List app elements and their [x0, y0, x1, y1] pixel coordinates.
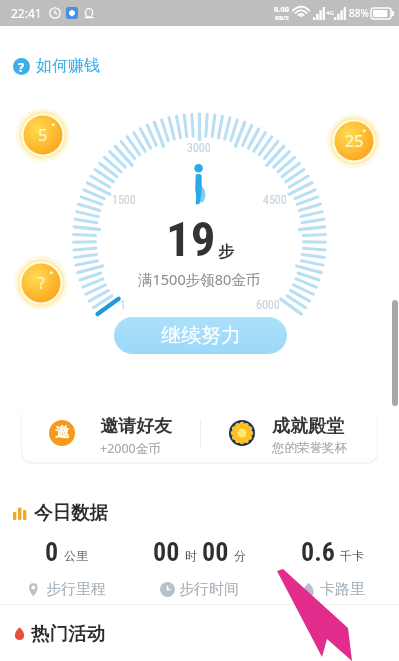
staticText: 分 — [234, 548, 246, 563]
staticText: 满1500步领80金币 — [138, 269, 261, 289]
staticText: 卡路里 — [320, 580, 365, 599]
staticText: 今日数据 — [34, 501, 108, 524]
staticText: 1500 — [112, 193, 136, 207]
staticText: 19 — [166, 211, 216, 268]
staticText: 22:41 — [11, 5, 42, 21]
staticText: 您的荣誉奖杯 — [272, 440, 347, 456]
staticText: 千卡 — [340, 548, 364, 563]
button[interactable]: Coin 25 — [327, 114, 381, 168]
staticText: 继续努力 — [161, 323, 241, 348]
staticText: KB/S — [275, 14, 289, 22]
button[interactable]: 邀 — [22, 404, 200, 462]
staticText: +2000金币 — [100, 440, 161, 457]
staticText: 热门活动 — [31, 622, 105, 645]
staticText: 0.00 — [274, 4, 289, 14]
button[interactable]: 热门活动 — [13, 622, 105, 645]
staticText: 时 — [185, 548, 197, 563]
staticText: 成就殿堂 — [272, 415, 344, 438]
button[interactable]: Coin ? — [14, 256, 68, 310]
staticText: 邀请好友 — [100, 415, 172, 438]
staticText: 88% — [349, 6, 369, 20]
staticText: 1 — [120, 298, 126, 312]
staticText: 步行里程 — [46, 580, 106, 599]
button[interactable]: 00 — [133, 537, 266, 599]
staticText: 4500 — [263, 193, 287, 207]
staticText: 6000 — [256, 298, 280, 312]
button[interactable]: 成就殿堂 — [201, 404, 377, 462]
staticText: 如何赚钱 — [36, 56, 100, 76]
staticText: 邀 — [55, 424, 69, 442]
staticText: 25 — [345, 130, 364, 152]
staticText: 步 — [218, 242, 234, 262]
staticText: 0 — [45, 537, 59, 567]
button[interactable]: Coin 5 — [16, 108, 70, 162]
staticText: 00 — [153, 537, 180, 567]
button[interactable]: 0 — [0, 537, 133, 599]
button[interactable]: ? — [13, 56, 100, 76]
button[interactable]: 0.6 — [266, 537, 399, 599]
staticText: 4G — [326, 9, 334, 17]
staticText: 0.6 — [301, 537, 335, 567]
staticText: 00 — [202, 537, 229, 567]
staticText: 3000 — [187, 141, 211, 155]
staticText: 步行时间 — [179, 580, 239, 599]
button[interactable]: 继续努力 — [114, 317, 287, 354]
staticText: 公里 — [64, 548, 88, 563]
staticText: 5 — [38, 124, 48, 146]
staticText: ? — [18, 58, 25, 74]
staticText: ? — [38, 272, 45, 294]
